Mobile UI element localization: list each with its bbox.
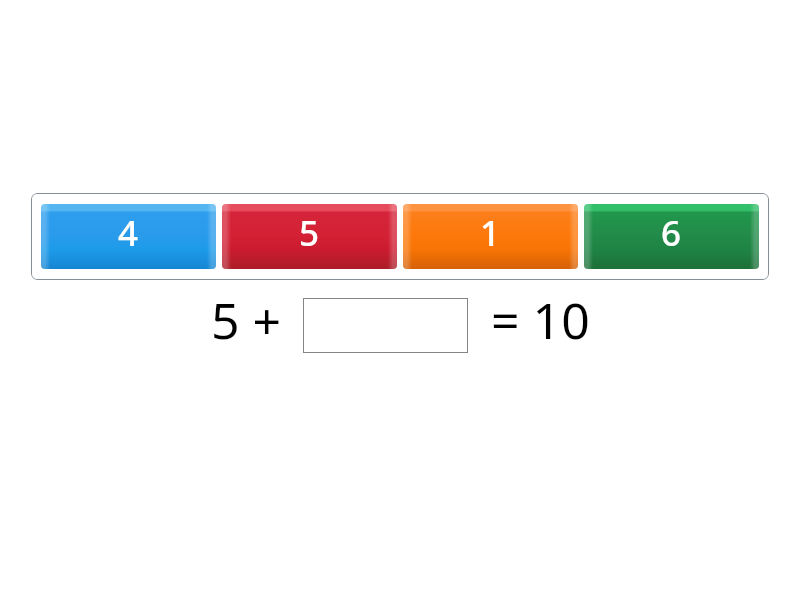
staticText: = 10: [491, 286, 590, 354]
staticText: 6: [661, 209, 682, 257]
staticText: 1: [480, 209, 501, 257]
button[interactable]: 6: [584, 204, 759, 269]
button[interactable]: 4: [41, 204, 216, 269]
button[interactable]: Missing number, drop answer here: [303, 298, 468, 353]
staticText: 5: [299, 209, 320, 257]
button[interactable]: 5: [222, 204, 397, 269]
staticText: 5 +: [211, 286, 282, 354]
button[interactable]: 1: [403, 204, 578, 269]
staticText: 4: [118, 209, 139, 257]
